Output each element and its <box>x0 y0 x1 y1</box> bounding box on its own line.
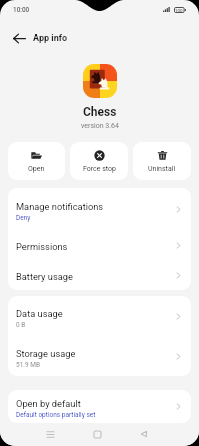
button[interactable]: Uninstall <box>133 142 191 180</box>
staticText: Storage usage <box>16 348 76 359</box>
button[interactable]: Battery usage <box>8 260 191 290</box>
staticText: Force stop <box>83 165 116 173</box>
staticText: Battery usage <box>16 271 73 282</box>
button[interactable]: Recent apps <box>39 423 61 445</box>
staticText: Open <box>28 165 45 173</box>
staticText: Manage notifications <box>16 201 104 212</box>
button[interactable]: Manage notifications <box>8 188 191 230</box>
staticText: version 3.64 <box>81 122 119 130</box>
staticText: Open by default <box>16 398 81 409</box>
button[interactable]: Permissions <box>8 230 191 260</box>
staticText: App info <box>33 33 67 44</box>
staticText: 0 B <box>16 321 26 329</box>
button[interactable]: Back <box>133 423 155 445</box>
staticText: 100 <box>175 8 183 13</box>
button[interactable]: Force stop <box>70 142 128 180</box>
button[interactable]: Open by default <box>8 390 191 423</box>
staticText: Data usage <box>16 308 63 319</box>
button[interactable]: Storage usage <box>8 336 191 376</box>
staticText: Deny <box>16 214 31 222</box>
button[interactable]: Home <box>86 423 108 445</box>
button[interactable]: Open <box>8 142 65 180</box>
button[interactable]: Data usage <box>8 296 191 336</box>
button[interactable]: Back <box>7 26 31 50</box>
staticText: 10:00 <box>13 6 30 14</box>
staticText: 51.9 MB <box>16 361 41 369</box>
staticText: Uninstall <box>148 165 176 173</box>
staticText: Default options partially set <box>16 411 96 419</box>
staticText: Chess <box>83 105 117 119</box>
staticText: Permissions <box>16 241 68 252</box>
